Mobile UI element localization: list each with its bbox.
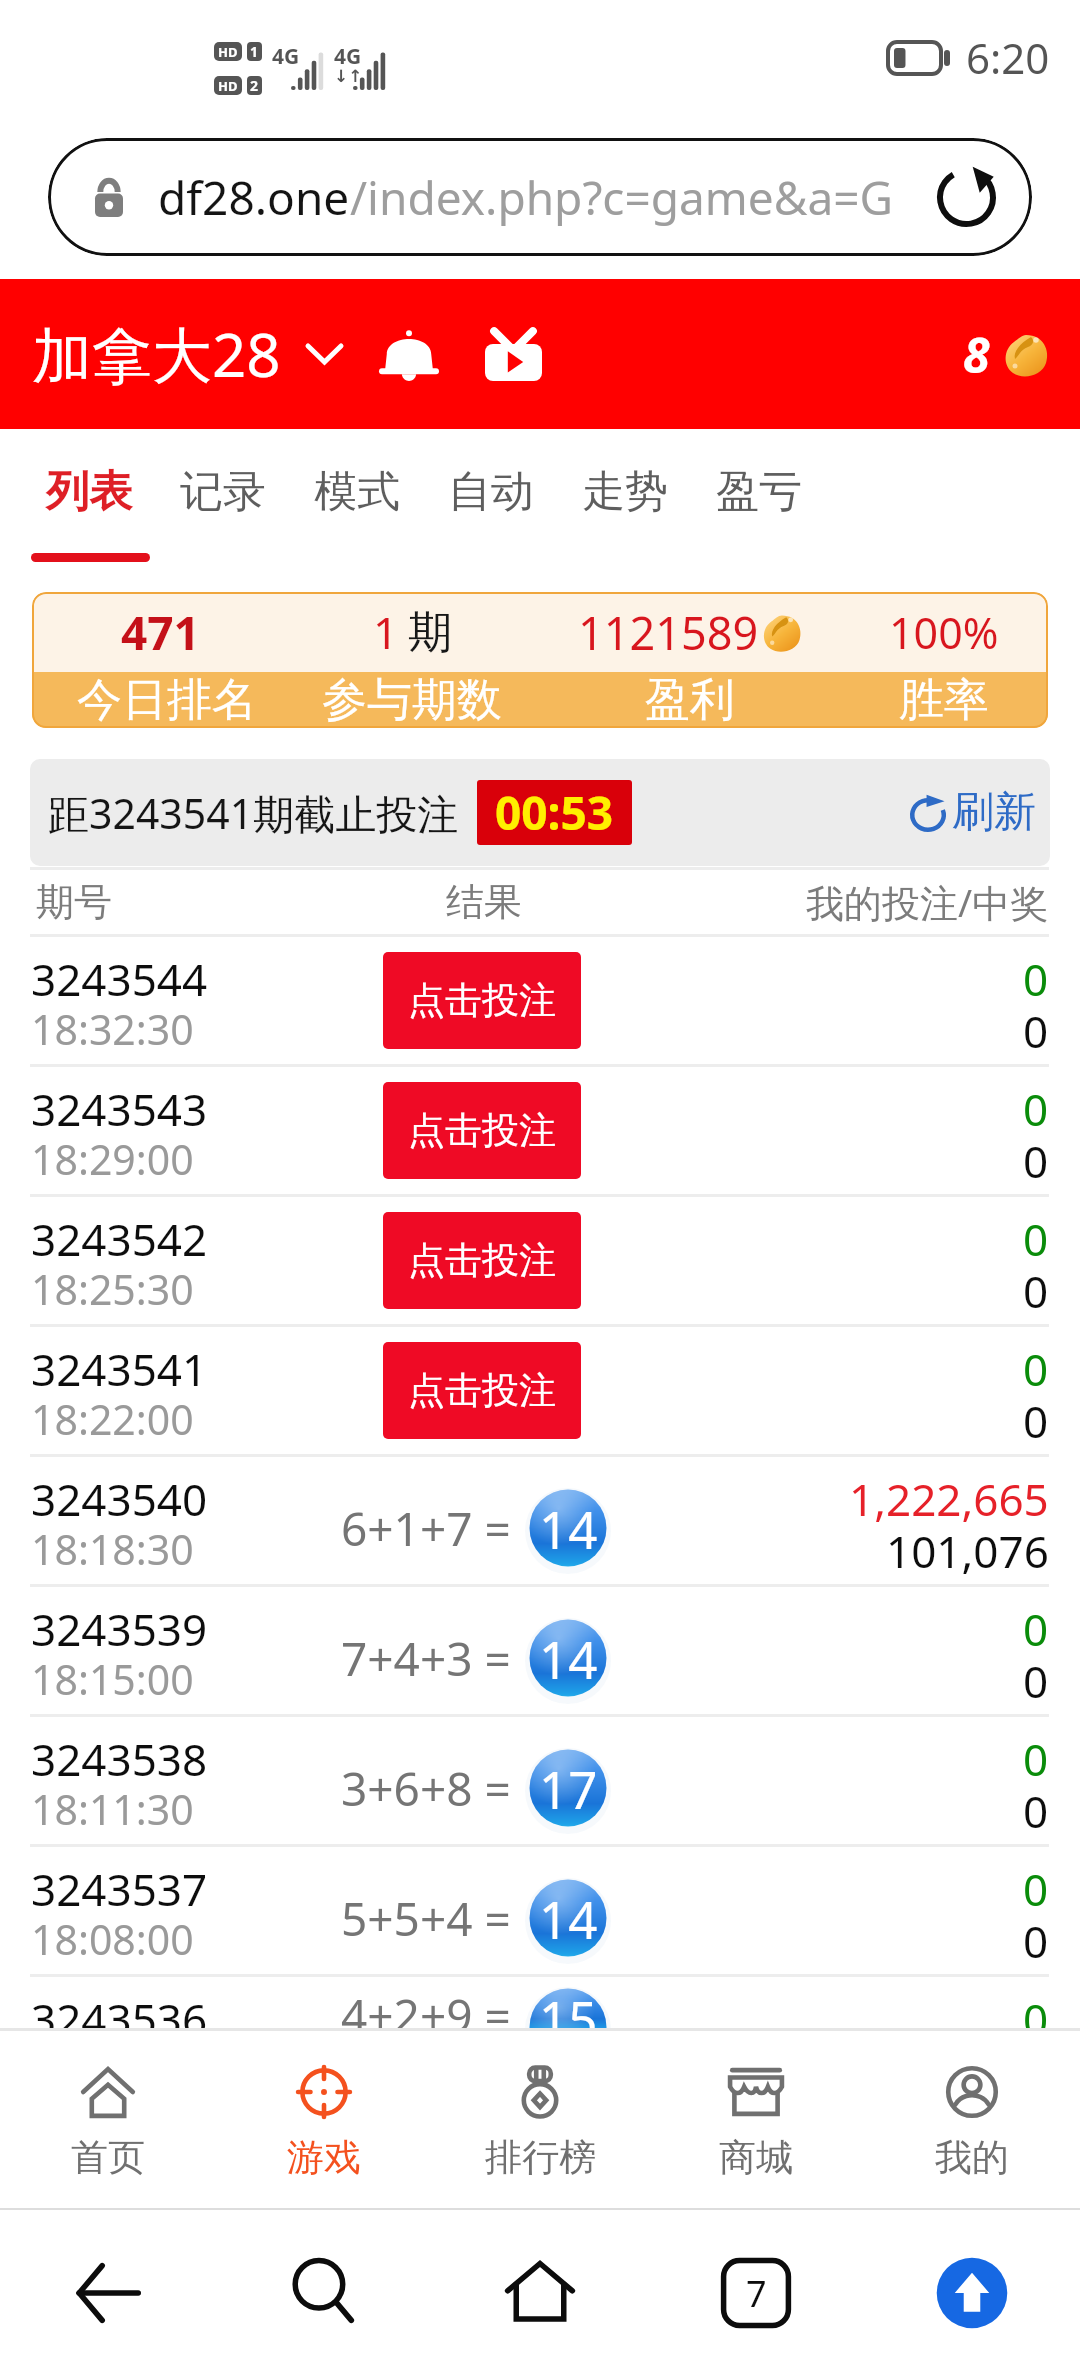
staticText: 18:25:30 (31, 1261, 194, 1317)
staticText: 距3243541期截止投注 (48, 785, 459, 841)
staticText: 0 (1023, 1131, 1049, 1191)
button[interactable]: 点击投注 (383, 1212, 581, 1309)
button[interactable]: 3243540 (0, 1457, 1080, 1584)
staticText: 自动 (448, 465, 534, 519)
button[interactable]: 列表 (22, 465, 156, 519)
button[interactable]: Home (432, 2210, 648, 2376)
staticText: 0 (1023, 1209, 1049, 1269)
button[interactable]: 记录 (156, 465, 290, 519)
staticText: 3243536 (31, 1989, 208, 2028)
staticText: 3243538 (31, 1729, 208, 1789)
button[interactable]: 3243538 (0, 1717, 1080, 1844)
staticText: 00:53 (495, 781, 614, 844)
staticText: /index.php?c=game&a=G (350, 166, 894, 229)
button[interactable]: 商城 (648, 2031, 864, 2208)
staticText: 我的 (935, 2134, 1009, 2181)
button[interactable]: 3243541 (0, 1327, 1080, 1454)
staticText: 3243539 (31, 1599, 208, 1659)
staticText: 首页 (71, 2134, 145, 2181)
staticText: 1121589 (578, 602, 759, 663)
staticText: 18:18:30 (31, 1521, 194, 1577)
staticText: 3243537 (31, 1859, 208, 1919)
staticText: 8 (963, 322, 990, 387)
staticText: 参与期数 (322, 672, 502, 728)
staticText: 4+2+9 = (341, 1984, 511, 2028)
staticText: 0 (1023, 1001, 1049, 1061)
staticText: 1 (373, 602, 399, 662)
button[interactable]: 3243536 (0, 1977, 1080, 2028)
staticText: 7+4+3 = (341, 1627, 511, 1690)
staticText: 4G (334, 42, 362, 71)
staticText: 6:20 (966, 29, 1050, 86)
staticText: 6+1+7 = (341, 1497, 511, 1560)
staticText: 0 (1023, 1261, 1049, 1321)
staticText: 0 (1023, 1729, 1049, 1789)
button[interactable]: 8 (963, 322, 1050, 387)
button[interactable]: 我的 (864, 2031, 1080, 2208)
button[interactable]: Tabs (648, 2210, 864, 2376)
staticText: 3243540 (31, 1469, 208, 1529)
staticText: 0 (1023, 1651, 1049, 1711)
staticText: 5+5+4 = (341, 1887, 511, 1950)
staticText: 点击投注 (408, 977, 556, 1024)
staticText: 3+6+8 = (341, 1757, 511, 1820)
staticText: 1 (250, 42, 259, 61)
staticText: 0 (1023, 1339, 1049, 1399)
button[interactable]: 排行榜 (432, 2031, 648, 2208)
button[interactable]: 首页 (0, 2031, 216, 2208)
staticText: 1,222,665 (849, 1469, 1049, 1529)
staticText: 我的投注/中奖 (806, 876, 1049, 928)
button[interactable]: 模式 (290, 465, 424, 519)
button[interactable]: 加拿大28 (32, 313, 341, 395)
staticText: 18:08:00 (31, 1911, 194, 1967)
staticText: HD (218, 43, 238, 61)
button[interactable]: 点击投注 (383, 1082, 581, 1179)
staticText: 100% (889, 603, 999, 662)
button[interactable]: Notifications (379, 326, 439, 382)
button[interactable]: 点击投注 (383, 952, 581, 1049)
button[interactable]: 盈亏 (692, 465, 826, 519)
button[interactable]: Scroll to top (864, 2210, 1080, 2376)
button[interactable]: 3243539 (0, 1587, 1080, 1714)
staticText: 18:29:00 (31, 1131, 194, 1187)
button[interactable]: df28.one (48, 138, 1032, 256)
button[interactable]: 刷新 (910, 786, 1036, 839)
staticText: 刷新 (952, 786, 1036, 839)
staticText: 0 (1023, 1859, 1049, 1919)
staticText: 14 (539, 1494, 598, 1563)
staticText: 列表 (46, 465, 132, 519)
staticText: 471 (121, 601, 200, 664)
staticText: 0 (1023, 1391, 1049, 1451)
button[interactable]: 自动 (424, 465, 558, 519)
staticText: 排行榜 (485, 2134, 596, 2181)
staticText: 点击投注 (408, 1367, 556, 1414)
staticText: HD (218, 77, 238, 95)
staticText: 胜率 (899, 672, 989, 728)
button[interactable]: 3243542 (0, 1197, 1080, 1324)
staticText: 3243541 (31, 1339, 208, 1399)
staticText: 0 (1023, 949, 1049, 1009)
button[interactable]: Back (0, 2210, 216, 2376)
button[interactable]: 3243543 (0, 1067, 1080, 1194)
staticText: 盈亏 (716, 465, 802, 519)
staticText: 14 (539, 1624, 598, 1693)
staticText: 17 (539, 1754, 598, 1823)
button[interactable]: Search (216, 2210, 432, 2376)
button[interactable]: Reload (937, 168, 996, 227)
staticText: 盈利 (645, 672, 735, 728)
staticText: 期 (408, 605, 452, 660)
button[interactable]: 3243544 (0, 937, 1080, 1064)
staticText: 14 (539, 1884, 598, 1953)
staticText: 游戏 (287, 2134, 361, 2181)
staticText: 商城 (719, 2134, 793, 2181)
button[interactable]: 点击投注 (383, 1342, 581, 1439)
staticText: 3243543 (31, 1079, 208, 1139)
button[interactable]: 走势 (558, 465, 692, 519)
staticText: 走势 (582, 465, 668, 519)
staticText: 15 (539, 1984, 598, 2028)
button[interactable]: 3243537 (0, 1847, 1080, 1974)
button[interactable]: 游戏 (216, 2031, 432, 2208)
staticText: 模式 (314, 465, 400, 519)
staticText: 点击投注 (408, 1107, 556, 1154)
button[interactable]: Video (485, 328, 542, 381)
